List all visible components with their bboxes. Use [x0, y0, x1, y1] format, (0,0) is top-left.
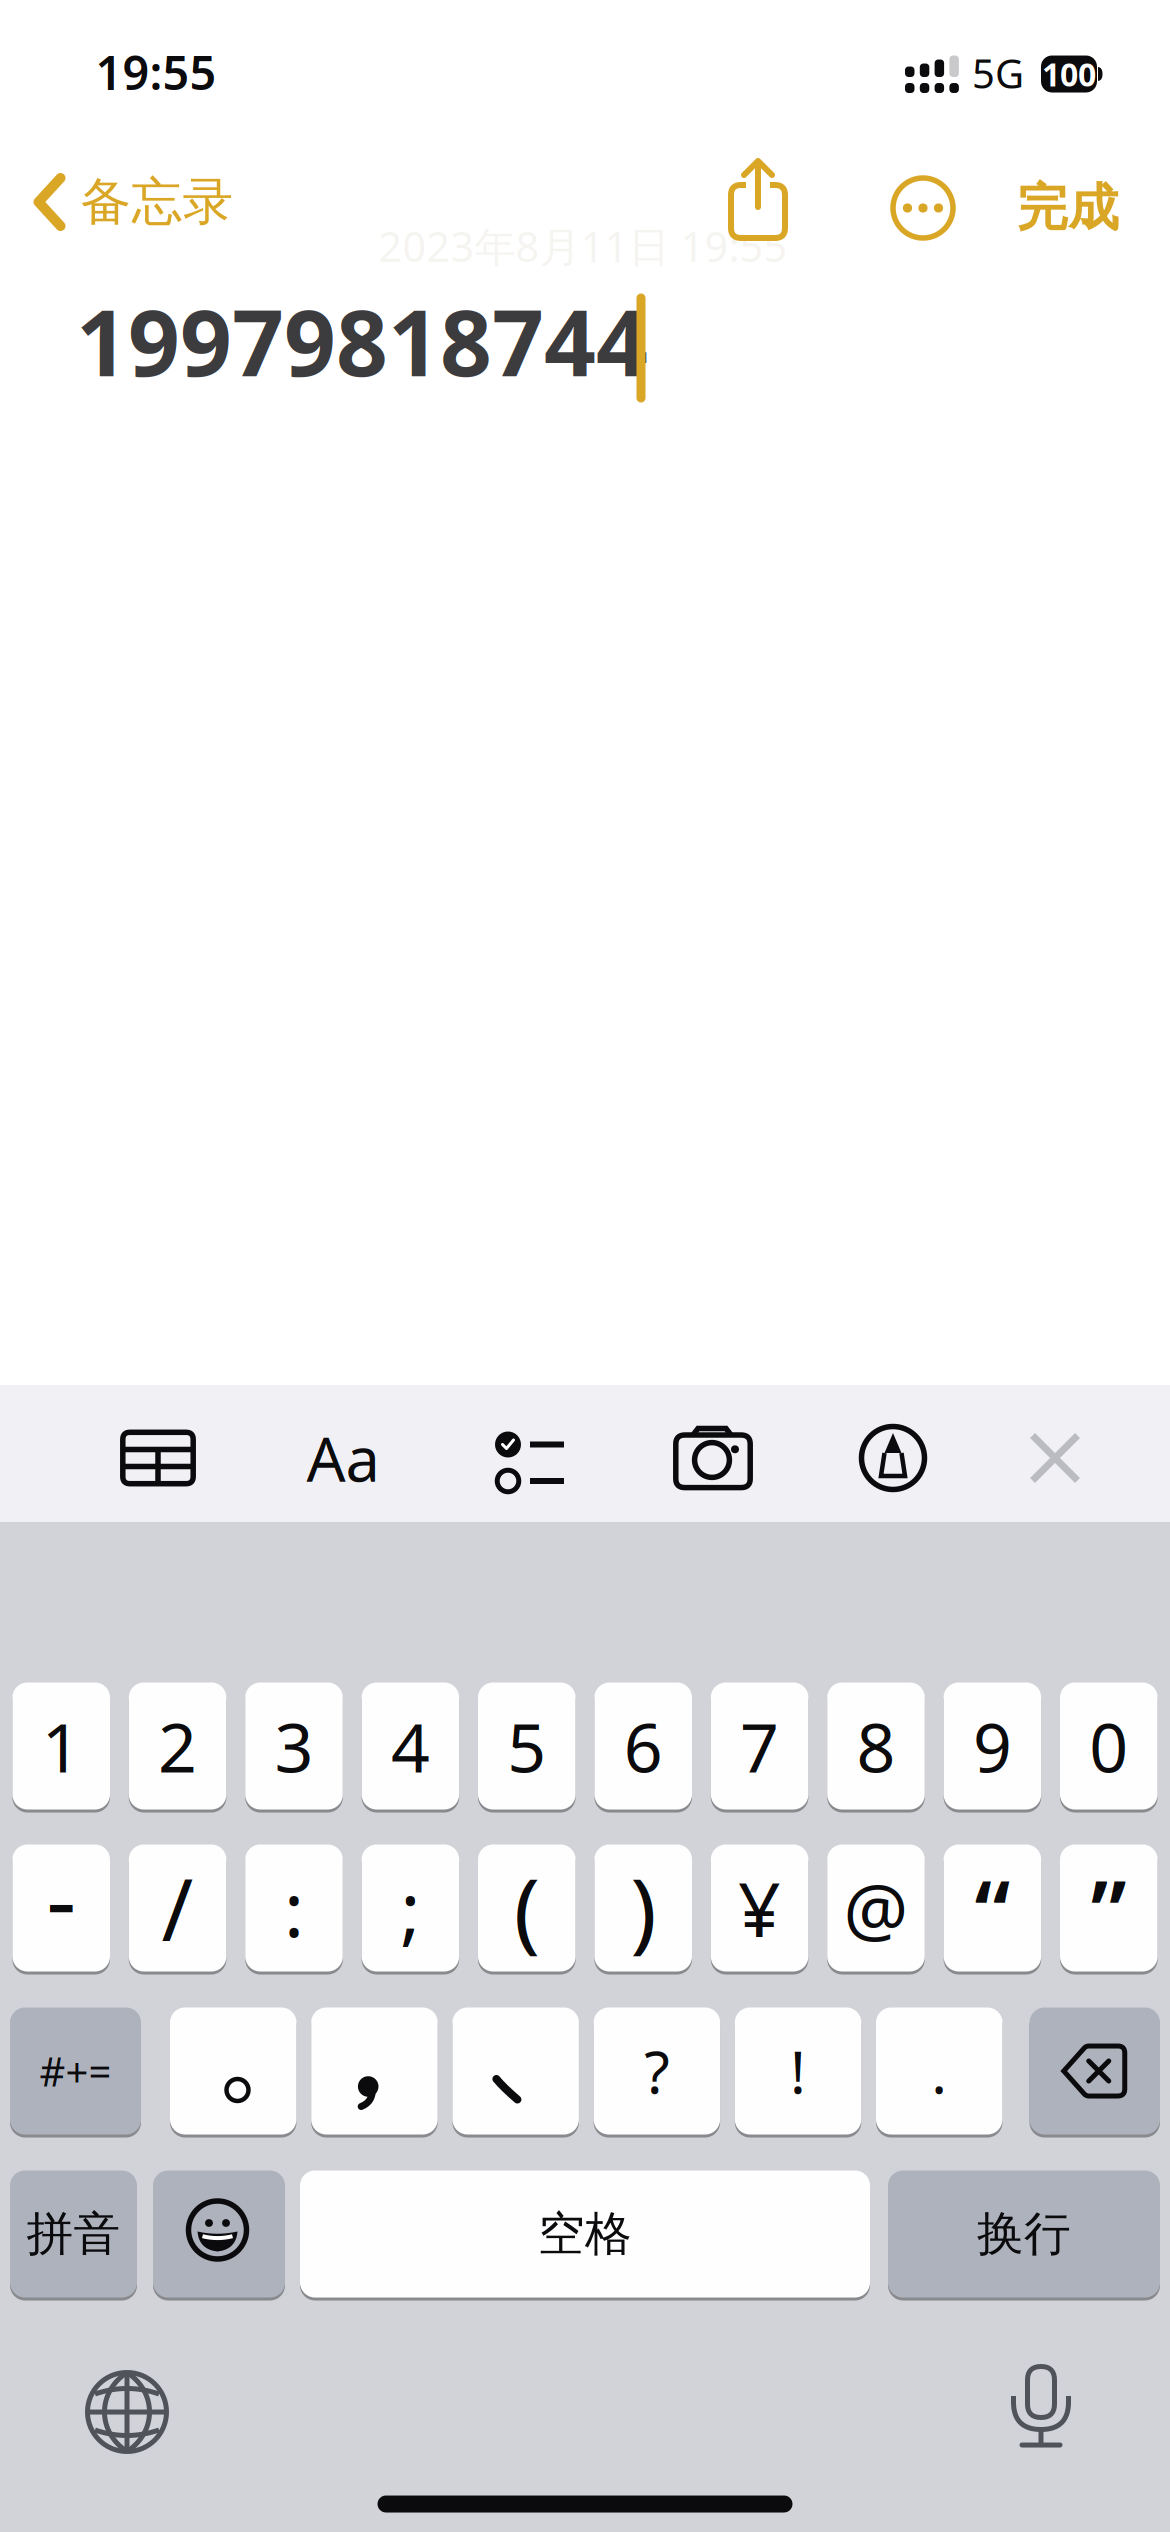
- button[interactable]: 空格: [300, 2170, 870, 2297]
- button[interactable]: 3: [245, 1682, 343, 1809]
- button[interactable]: Markup: [858, 1423, 928, 1493]
- staticText: (: [514, 1850, 540, 1966]
- button[interactable]: 7: [711, 1682, 808, 1809]
- button[interactable]: [170, 2007, 296, 2134]
- staticText: @: [843, 1860, 908, 1956]
- staticText: 4: [391, 1701, 430, 1791]
- staticText: 1: [42, 1701, 81, 1791]
- button[interactable]: [452, 2007, 579, 2134]
- button[interactable]: Camera: [673, 1424, 753, 1494]
- button[interactable]: 6: [594, 1682, 692, 1809]
- staticText: 19979818744: [76, 279, 648, 403]
- button[interactable]: Next keyboard: [85, 2370, 169, 2454]
- staticText: 0: [1089, 1701, 1128, 1791]
- button[interactable]: Share: [730, 159, 786, 241]
- staticText: ”: [1091, 1852, 1127, 1968]
- staticText: 2023年8月11日 19:55: [378, 219, 787, 273]
- button[interactable]: 拼音: [10, 2170, 137, 2297]
- staticText: 5G: [972, 46, 1024, 99]
- button[interactable]: Format: [306, 1417, 379, 1499]
- button[interactable]: Dictation: [1011, 2364, 1071, 2450]
- staticText: ): [630, 1850, 656, 1966]
- button[interactable]: 2: [129, 1682, 226, 1809]
- button[interactable]: ?: [594, 2007, 720, 2134]
- button[interactable]: ¥: [711, 1844, 808, 1971]
- staticText: 3: [274, 1701, 313, 1791]
- button[interactable]: [153, 2170, 285, 2297]
- staticText: 6: [624, 1701, 663, 1791]
- button[interactable]: 5: [478, 1682, 576, 1809]
- button[interactable]: ;: [362, 1844, 459, 1971]
- button[interactable]: 完成: [1017, 176, 1119, 240]
- button[interactable]: 4: [362, 1682, 459, 1809]
- staticText: 拼音: [26, 2205, 120, 2263]
- staticText: :: [284, 1858, 304, 1958]
- button[interactable]: 备忘录: [32, 171, 233, 233]
- staticText: ;: [400, 1858, 420, 1958]
- staticText: 换行: [977, 2205, 1071, 2263]
- button[interactable]: 8: [827, 1682, 925, 1809]
- staticText: 19:55: [95, 40, 216, 104]
- button[interactable]: :: [245, 1844, 343, 1971]
- button[interactable]: Insert table: [120, 1429, 196, 1486]
- button[interactable]: [1029, 2007, 1160, 2134]
- button[interactable]: 0: [1060, 1682, 1158, 1809]
- button[interactable]: 换行: [888, 2170, 1160, 2297]
- staticText: ¥: [738, 1858, 781, 1958]
- staticText: 空格: [538, 2205, 632, 2263]
- button[interactable]: #+=: [10, 2007, 141, 2134]
- button[interactable]: @: [827, 1844, 925, 1971]
- button[interactable]: /: [129, 1844, 226, 1971]
- button[interactable]: “: [944, 1844, 1041, 1971]
- staticText: !: [790, 2032, 806, 2110]
- staticText: “: [974, 1852, 1010, 1968]
- staticText: -: [46, 1835, 76, 1959]
- button[interactable]: 9: [944, 1682, 1041, 1809]
- button[interactable]: -: [12, 1844, 110, 1971]
- button[interactable]: Dismiss keyboard: [1029, 1432, 1081, 1484]
- button[interactable]: !: [735, 2007, 861, 2134]
- button[interactable]: ”: [1060, 1844, 1158, 1971]
- staticText: 9: [973, 1701, 1012, 1791]
- staticText: 5: [507, 1701, 546, 1791]
- staticText: 备忘录: [80, 171, 233, 233]
- button[interactable]: 1: [12, 1682, 110, 1809]
- staticText: 7: [740, 1701, 779, 1791]
- button[interactable]: Checklist: [489, 1427, 565, 1491]
- button[interactable]: More: [890, 175, 956, 241]
- staticText: /: [162, 1851, 194, 1965]
- staticText: 8: [856, 1701, 895, 1791]
- staticText: 完成: [1017, 176, 1119, 240]
- staticText: ?: [644, 2032, 669, 2110]
- button[interactable]: .: [876, 2007, 1002, 2134]
- staticText: Aa: [306, 1417, 379, 1499]
- button[interactable]: (: [478, 1844, 576, 1971]
- button[interactable]: ): [594, 1844, 692, 1971]
- staticText: 2: [158, 1701, 197, 1791]
- button[interactable]: [311, 2007, 438, 2134]
- staticText: 100: [1042, 52, 1096, 96]
- staticText: #+=: [39, 2044, 111, 2097]
- staticText: .: [931, 2032, 947, 2110]
